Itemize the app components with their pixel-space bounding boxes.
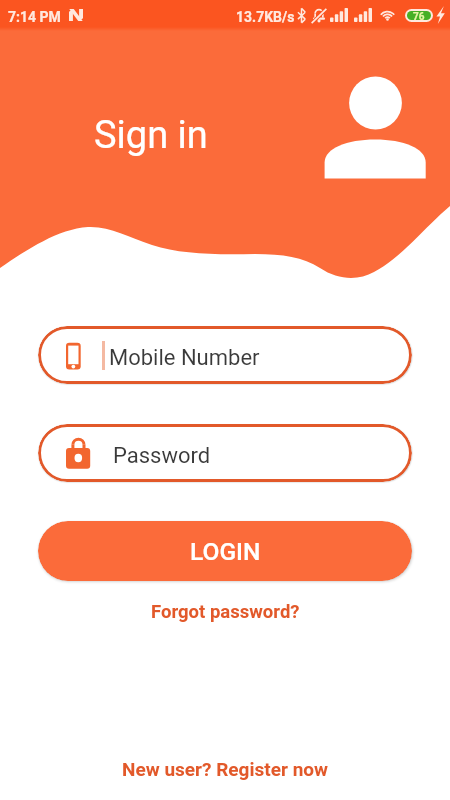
- staticText: Sign in: [94, 113, 208, 158]
- staticText: 13.7KB/s: [236, 9, 295, 25]
- staticText: 7:14 PM: [8, 9, 61, 25]
- staticText: LOGIN: [190, 537, 261, 566]
- staticText: New user? Register now: [122, 758, 328, 780]
- staticText: 76: [413, 11, 425, 20]
- staticText: Mobile Number: [109, 345, 260, 371]
- staticText: Password: [113, 443, 211, 469]
- button[interactable]: Password: [38, 424, 412, 482]
- other: Profile: [320, 70, 435, 185]
- button[interactable]: Mobile Number: [38, 326, 412, 384]
- button[interactable]: Forgot password?: [147, 597, 304, 627]
- staticText: Forgot password?: [151, 601, 300, 623]
- button[interactable]: LOGIN: [38, 521, 412, 581]
- button[interactable]: New user? Register now: [116, 752, 334, 786]
